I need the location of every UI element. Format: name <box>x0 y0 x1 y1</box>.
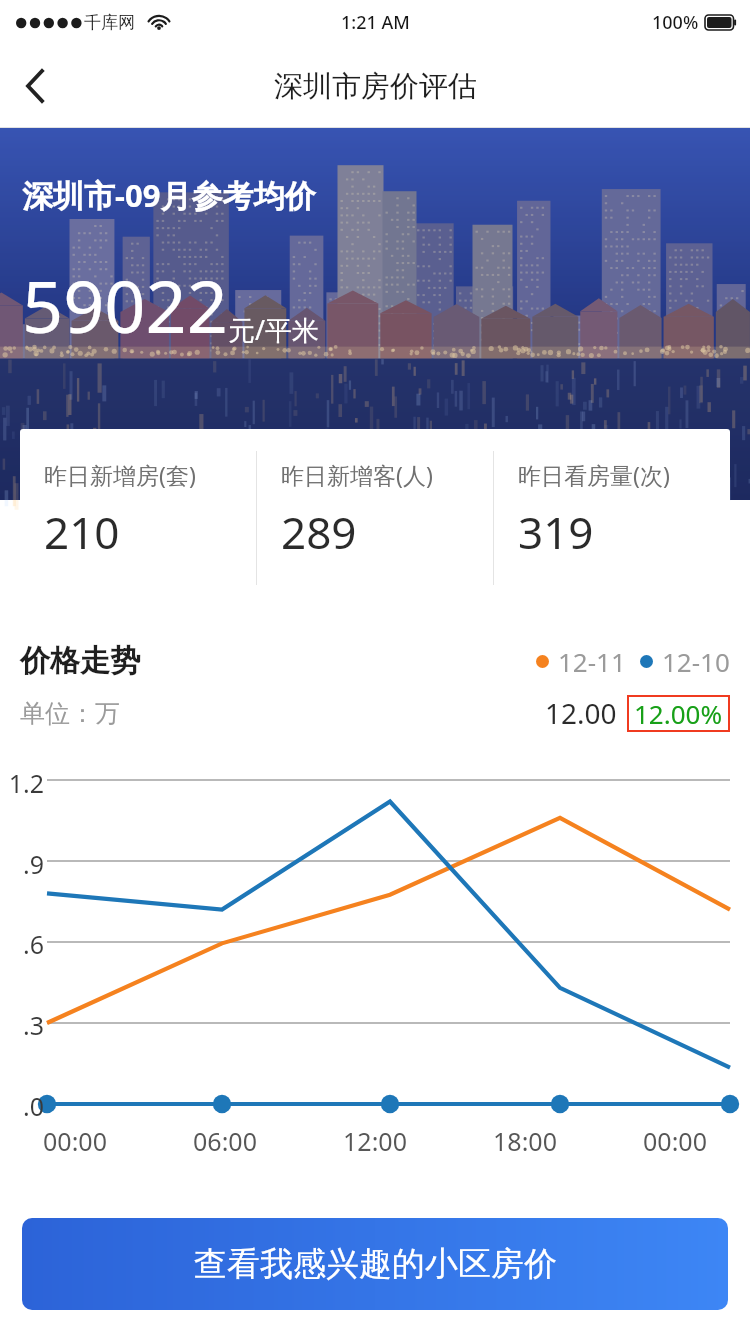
staticText: 查看我感兴趣的小区房价 <box>194 1243 557 1285</box>
staticText: 昨日新增客(人) <box>281 459 433 490</box>
staticText: 319 <box>518 502 594 562</box>
staticText: 12.00% <box>634 696 723 731</box>
staticText: 12.00 <box>545 694 617 732</box>
staticText: .3 <box>2 1008 44 1042</box>
staticText: 元/平米 <box>228 311 320 348</box>
staticText: 210 <box>44 502 120 562</box>
staticText: 1.2 <box>2 766 44 800</box>
staticText: 12:00 <box>300 1124 450 1158</box>
staticText: 昨日新增房(套) <box>44 459 196 490</box>
staticText: 59022 <box>22 256 228 354</box>
staticText: 18:00 <box>450 1124 600 1158</box>
staticText: .6 <box>2 927 44 961</box>
staticText: .9 <box>2 847 44 881</box>
staticText: 00:00 <box>600 1124 750 1158</box>
button[interactable]: 查看我感兴趣的小区房价 <box>22 1218 728 1310</box>
staticText: .0 <box>2 1089 44 1123</box>
staticText: 100% <box>652 10 699 35</box>
staticText: 深圳市房价评估 <box>274 68 477 105</box>
staticText: 昨日看房量(次) <box>518 459 670 490</box>
staticText: 价格走势 <box>20 642 140 680</box>
button[interactable]: Back <box>6 57 64 115</box>
staticText: 1:21 AM <box>341 10 410 35</box>
staticText: 00:00 <box>0 1124 150 1158</box>
staticText: 06:00 <box>150 1124 300 1158</box>
staticText: 千库网 <box>84 12 135 33</box>
staticText: 单位：万 <box>20 698 120 729</box>
staticText: 深圳市-09月参考均价 <box>22 174 316 216</box>
staticText: 12-10 <box>662 644 730 679</box>
staticText: 12-11 <box>558 644 626 679</box>
staticText: 289 <box>281 502 357 562</box>
